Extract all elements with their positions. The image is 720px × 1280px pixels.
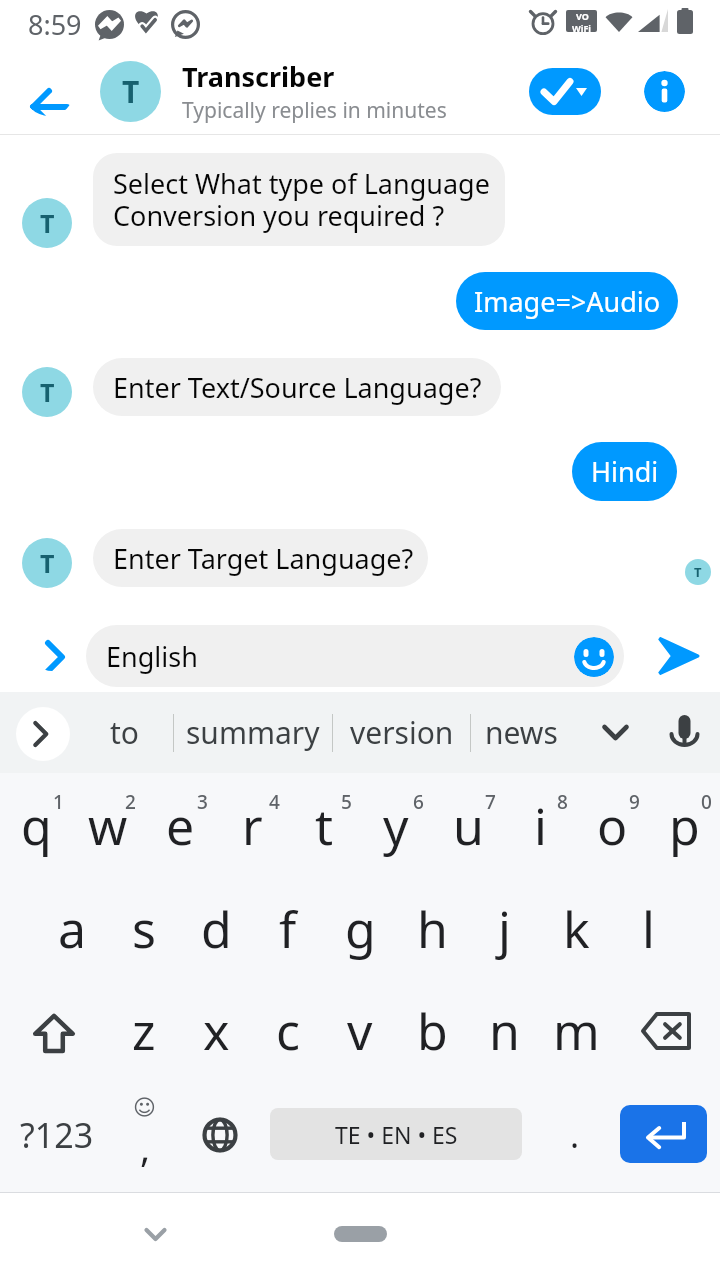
staticText: Enter Target Language? (113, 540, 414, 577)
staticText: 7 (485, 789, 496, 815)
button[interactable]: More suggestions (593, 710, 638, 755)
button[interactable]: o (576, 773, 648, 879)
button[interactable]: Mark as done (529, 68, 601, 115)
button[interactable]: g (324, 879, 396, 979)
staticText: s (132, 895, 156, 963)
button[interactable]: Send (652, 630, 704, 682)
button[interactable]: f (252, 879, 324, 979)
staticText: English (106, 638, 198, 675)
button[interactable]: ?123 (2, 1083, 112, 1187)
button[interactable]: v (324, 979, 396, 1083)
staticText: e (166, 792, 195, 860)
button[interactable]: s (108, 879, 180, 979)
staticText: TE • EN • ES (335, 1119, 458, 1150)
button[interactable]: e (144, 773, 216, 879)
button[interactable]: Shift (0, 979, 108, 1083)
button[interactable]: y (360, 773, 432, 879)
button[interactable]: Select What type of Language Conversion … (93, 153, 505, 246)
staticText: Hindi (591, 453, 659, 490)
button[interactable]: h (396, 879, 468, 979)
button[interactable]: Expand (16, 707, 70, 761)
staticText: version (350, 712, 454, 753)
staticText: 4 (269, 789, 280, 815)
staticText: summary (186, 712, 320, 753)
staticText: a (58, 895, 87, 963)
button[interactable]: Info (644, 71, 685, 112)
staticText: 9 (629, 789, 640, 815)
staticText: c (276, 997, 300, 1065)
button[interactable]: m (540, 979, 612, 1083)
button[interactable]: p (648, 773, 720, 879)
button[interactable]: Hindi (572, 442, 677, 501)
button[interactable]: More options (32, 631, 72, 671)
staticText: Image=>Audio (474, 283, 661, 320)
staticText: x (203, 997, 230, 1065)
button[interactable]: r (216, 773, 288, 879)
staticText: d (201, 895, 232, 963)
staticText: Typically replies in minutes (182, 96, 447, 125)
staticText: v (347, 997, 373, 1065)
button[interactable]: Backspace (612, 979, 720, 1083)
button[interactable]: a (36, 879, 108, 979)
button[interactable]: Enter Text/Source Language? (93, 358, 501, 416)
button[interactable]: Enter (620, 1105, 707, 1163)
button[interactable]: Hide keyboard (134, 1213, 177, 1256)
button[interactable]: k (540, 879, 612, 979)
button[interactable]: Home (334, 1226, 387, 1242)
staticText: ?123 (20, 1112, 94, 1158)
staticText: k (563, 895, 590, 963)
staticText: t (315, 792, 334, 860)
staticText: VO (576, 10, 589, 22)
button[interactable]: ☺ (110, 1083, 180, 1187)
button[interactable]: n (468, 979, 540, 1083)
staticText: r (242, 792, 263, 860)
button[interactable]: to (75, 692, 173, 773)
staticText: m (553, 997, 600, 1065)
button[interactable]: Change keyboard language (184, 1083, 256, 1187)
staticText: h (417, 895, 448, 963)
staticText: 8 (557, 789, 568, 815)
button[interactable]: version (333, 692, 470, 773)
button[interactable]: English (86, 625, 624, 687)
staticText: q (21, 792, 52, 860)
staticText: f (279, 895, 297, 963)
button[interactable]: Voice input (662, 706, 707, 751)
staticText: i (534, 792, 547, 860)
button[interactable]: i (504, 773, 576, 879)
staticText: j (498, 895, 511, 963)
button[interactable]: b (396, 979, 468, 1083)
button[interactable]: l (612, 879, 684, 979)
button[interactable]: c (252, 979, 324, 1083)
staticText: p (669, 792, 700, 860)
button[interactable]: u (432, 773, 504, 879)
button[interactable]: Enter Target Language? (93, 529, 428, 587)
button[interactable]: j (468, 879, 540, 979)
button[interactable]: z (108, 979, 180, 1083)
button[interactable]: Emoji (574, 637, 614, 677)
button[interactable]: Image=>Audio (456, 272, 678, 330)
staticText: T (694, 563, 702, 581)
staticText: 1 (53, 789, 64, 815)
staticText: Transcriber (182, 58, 335, 95)
staticText: 2 (125, 789, 136, 815)
staticText: 3 (197, 789, 208, 815)
button[interactable]: d (180, 879, 252, 979)
button[interactable]: TE • EN • ES (270, 1108, 522, 1160)
button[interactable]: news (471, 692, 571, 773)
staticText: z (132, 997, 156, 1065)
staticText: l (642, 895, 655, 963)
button[interactable]: w (72, 773, 144, 879)
staticText: y (383, 792, 409, 860)
button[interactable]: q (0, 773, 72, 879)
staticText: b (417, 997, 448, 1065)
staticText: w (88, 792, 128, 860)
button[interactable]: x (180, 979, 252, 1083)
button[interactable]: t (288, 773, 360, 879)
staticText: T (40, 206, 55, 240)
button[interactable]: . (540, 1083, 610, 1187)
staticText: . (570, 1112, 580, 1158)
staticText: n (489, 997, 520, 1065)
staticText: WiFi (572, 22, 592, 32)
button[interactable]: Back (24, 66, 74, 116)
button[interactable]: summary (174, 692, 332, 773)
